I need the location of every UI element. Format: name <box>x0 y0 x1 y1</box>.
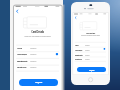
staticText: Expiration Date <box>75 54 85 56</box>
staticText: Required <box>85 44 90 46</box>
button[interactable]: Name <box>75 43 106 47</box>
staticText: Card Details <box>73 32 108 35</box>
staticText: Enter your card details to use this serv… <box>73 35 108 37</box>
staticText: Required <box>30 66 36 69</box>
staticText: Required <box>30 60 36 63</box>
button[interactable]: Card Number <box>17 52 59 57</box>
button[interactable]: Pay $41.99 <box>77 67 106 72</box>
button[interactable]: Pay $41.99 <box>19 79 58 86</box>
staticText: Security Code <box>75 58 85 60</box>
button[interactable]: Expiration Date <box>75 53 106 57</box>
staticText: Card Number <box>17 53 30 56</box>
staticText: Expiration Date <box>17 60 30 63</box>
button[interactable]: Security Code <box>17 65 59 70</box>
button[interactable]: Back <box>15 9 20 14</box>
staticText: Security Code <box>17 66 30 69</box>
button[interactable]: Expiration Date <box>17 59 59 64</box>
button[interactable]: Security Code <box>75 57 106 61</box>
staticText: Name <box>17 47 30 50</box>
staticText: Required <box>30 53 36 56</box>
staticText: Card Number <box>75 49 85 51</box>
button[interactable]: Name <box>17 46 59 51</box>
staticText: Required <box>85 58 90 60</box>
staticText: Pay $41.99 <box>89 69 94 71</box>
staticText: Pay $41.99 <box>35 81 42 84</box>
staticText: Card Details <box>14 30 61 34</box>
staticText: Required <box>85 54 90 56</box>
button[interactable]: Back <box>74 16 77 19</box>
staticText: Enter your card details to use this serv… <box>14 35 61 38</box>
staticText: Required <box>30 47 36 50</box>
staticText: Name <box>75 44 85 46</box>
button[interactable]: Card Number <box>75 48 106 52</box>
staticText: Required <box>85 49 90 51</box>
